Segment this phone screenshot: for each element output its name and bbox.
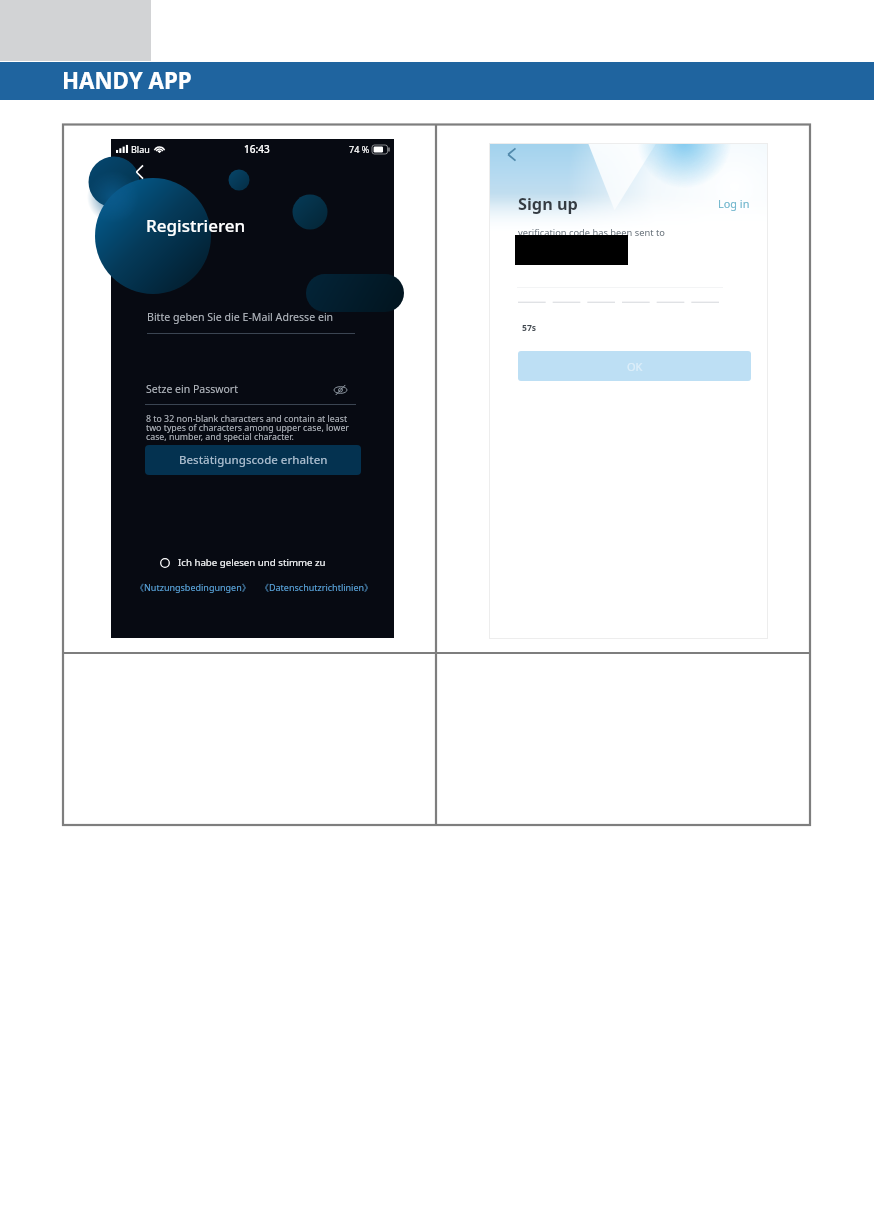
button[interactable]: Back xyxy=(132,161,148,183)
staticText: 8 to 32 non-blank characters and contain… xyxy=(146,413,350,443)
button[interactable]: Bestätigungscode erhalten xyxy=(145,445,361,475)
staticText: Registrieren xyxy=(146,214,246,237)
staticText: 16:43 xyxy=(244,142,270,156)
staticText: Setze ein Passwort xyxy=(146,382,238,396)
staticText: OK xyxy=(627,359,643,374)
staticText: 74 % xyxy=(349,143,370,155)
button[interactable]: 《Nutzungsbedingungen》 xyxy=(135,581,251,593)
staticText: Ich habe gelesen und stimme zu xyxy=(178,556,326,569)
button[interactable]: Back xyxy=(506,146,519,163)
button[interactable]: 《Datenschutzrichtlinien》 xyxy=(260,581,374,593)
staticText: Bestätigungscode erhalten xyxy=(179,452,328,468)
button[interactable]: Show password xyxy=(333,384,348,396)
staticText: 57s xyxy=(522,322,537,334)
button[interactable]: Ich habe gelesen und stimme zu xyxy=(160,556,326,569)
staticText: HANDY APP xyxy=(62,65,192,95)
staticText: Blau xyxy=(131,143,150,155)
staticText: verification code has been sent to xyxy=(518,226,665,239)
staticText: Bitte geben Sie die E-Mail Adresse ein xyxy=(147,310,334,324)
button[interactable]: Log in xyxy=(718,196,750,211)
staticText: Sign up xyxy=(518,193,578,215)
